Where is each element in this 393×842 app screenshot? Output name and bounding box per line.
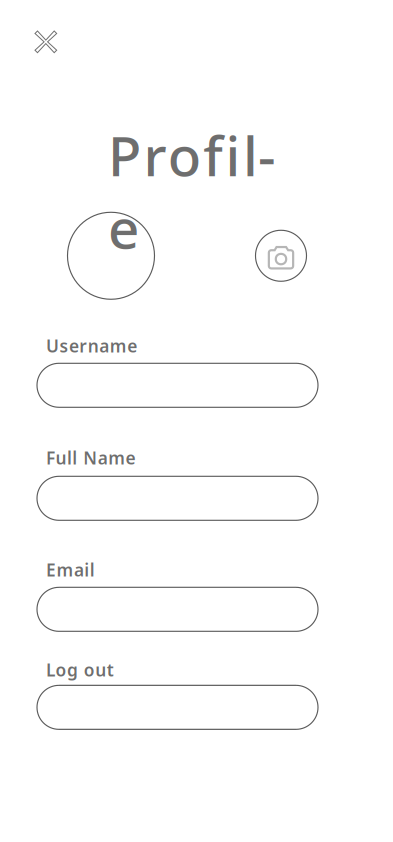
button[interactable]: Log out: [37, 685, 318, 729]
button[interactable]: Username: [37, 363, 318, 407]
button[interactable]: Email: [37, 587, 318, 631]
staticText: Email: [46, 558, 95, 581]
button[interactable]: Full Name: [37, 476, 318, 520]
staticText: Log out: [46, 658, 114, 681]
staticText: Username: [46, 334, 137, 357]
staticText: Full Name: [46, 446, 136, 469]
button[interactable]: Change photo: [255, 230, 306, 281]
staticText: Profile: [108, 119, 291, 191]
button[interactable]: Close: [0, 0, 69, 65]
